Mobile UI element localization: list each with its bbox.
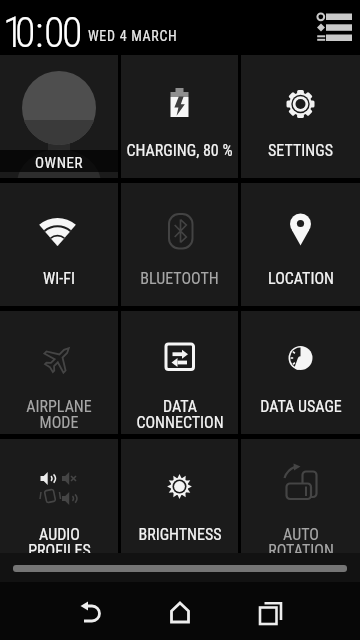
staticText: WI-FI	[43, 269, 75, 288]
button[interactable]: CHARGING, 80 %	[121, 55, 238, 178]
button[interactable]: AUTO ROTATION	[241, 439, 360, 562]
button[interactable]	[310, 5, 360, 50]
staticText: LOCATION	[268, 269, 334, 288]
staticText: CHARGING, 80 %	[126, 141, 233, 160]
button[interactable]: WI-FI	[0, 183, 118, 306]
staticText: 1	[3, 8, 24, 57]
staticText: :	[35, 8, 44, 57]
staticText: BLUETOOTH	[140, 269, 219, 288]
staticText: AIRPLANE MODE	[26, 397, 92, 432]
button[interactable]: DATA CONNECTION	[121, 311, 238, 434]
staticText: BRIGHTNESS	[138, 525, 222, 544]
button[interactable]	[72, 595, 108, 631]
staticText: DATA CONNECTION	[136, 397, 224, 432]
button[interactable]: DATA USAGE	[241, 311, 360, 434]
staticText: 0	[15, 8, 36, 57]
staticText: DATA USAGE	[260, 397, 342, 416]
button[interactable]: AUDIO PROFILES	[0, 439, 118, 562]
button[interactable]	[13, 565, 347, 572]
button[interactable]	[0, 55, 118, 178]
staticText: OWNER	[35, 154, 84, 172]
button[interactable]: BRIGHTNESS	[121, 439, 238, 562]
button[interactable]: SETTINGS	[241, 55, 360, 178]
staticText: SETTINGS	[268, 141, 333, 160]
button[interactable]	[250, 595, 290, 631]
staticText: WED 4 MARCH	[88, 28, 178, 44]
button[interactable]: AIRPLANE MODE	[0, 311, 118, 434]
button[interactable]: LOCATION	[241, 183, 360, 306]
staticText: 0	[44, 8, 65, 57]
staticText: 0	[62, 8, 83, 57]
staticText: AUTO ROTATION	[268, 525, 334, 560]
button[interactable]	[162, 595, 198, 631]
staticText: AUDIO PROFILES	[28, 525, 91, 560]
button[interactable]: BLUETOOTH	[121, 183, 238, 306]
